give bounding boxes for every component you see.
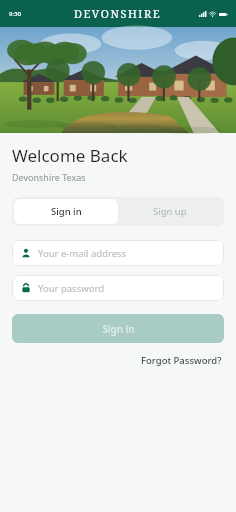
- button[interactable]: Your password: [12, 275, 224, 301]
- staticText: DEVONSHIRE: [74, 6, 162, 21]
- button[interactable]: Sign in: [12, 314, 224, 343]
- button[interactable]: Sign up: [118, 199, 222, 224]
- staticText: Welcome Back: [12, 144, 128, 167]
- staticText: Sign in: [102, 322, 135, 336]
- staticText: Your password: [38, 282, 104, 295]
- staticText: 9:30: [9, 10, 21, 18]
- button[interactable]: Sign in: [14, 199, 118, 224]
- staticText: Sign up: [153, 205, 187, 218]
- staticText: Sign in: [51, 205, 82, 218]
- staticText: Forgot Password?: [141, 354, 222, 367]
- button[interactable]: Your e-mail address: [12, 240, 224, 266]
- staticText: Your e-mail address: [38, 247, 127, 260]
- staticText: Devonshire Texas: [12, 171, 86, 183]
- button[interactable]: Forgot Password?: [139, 352, 224, 369]
